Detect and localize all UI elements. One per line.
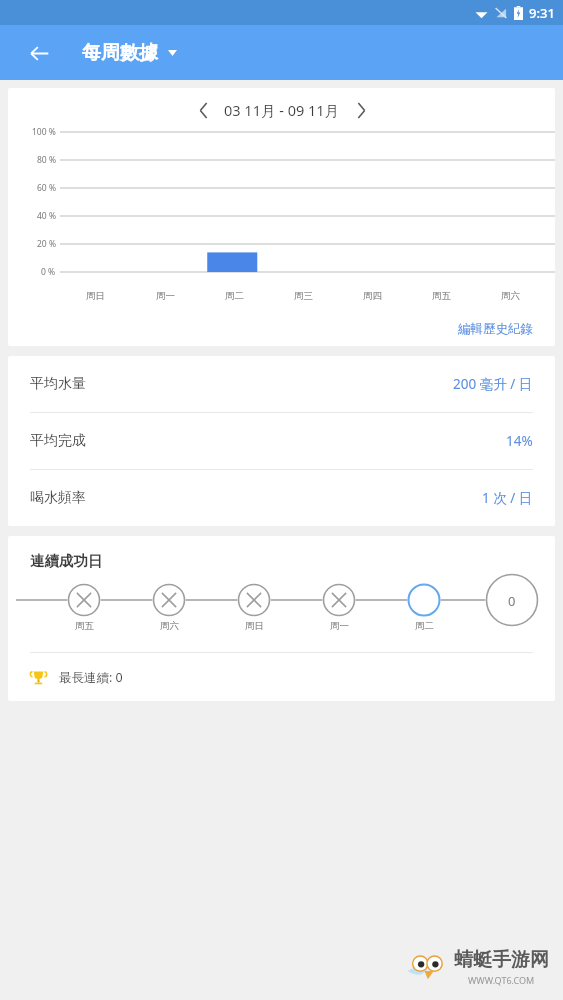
staticText: 周三 [294,290,313,302]
staticText: 周一 [330,620,349,632]
staticText: 每周數據 [82,41,158,65]
button[interactable]: Previous week [186,93,220,127]
staticText: 03 11月 - 09 11月 [224,100,340,120]
staticText: 喝水頻率 [30,489,86,507]
staticText: 周二 [225,290,244,302]
staticText: 連續成功日 [30,552,103,570]
staticText: 周五 [432,290,451,302]
button[interactable]: 每周數據 [82,41,177,65]
staticText: 平均完成 [30,432,86,450]
staticText: 周日 [245,620,264,632]
button[interactable]: 編輯歷史紀錄 [436,315,555,343]
staticText: 最長連續: 0 [59,669,123,686]
staticText: 1 次 / 日 [482,489,533,507]
staticText: 80 % [37,154,56,166]
staticText: 周五 [75,620,94,632]
staticText: WWW.QT6.COM [468,974,535,986]
staticText: 編輯歷史紀錄 [458,321,533,337]
staticText: 周六 [160,620,179,632]
staticText: 周四 [363,290,382,302]
staticText: 平均水量 [30,375,86,393]
staticText: 0 [508,592,516,610]
button[interactable]: Back [20,34,58,72]
staticText: 周二 [415,620,434,632]
staticText: 20 % [37,238,56,250]
staticText: 0 % [41,266,56,278]
staticText: 蜻蜓手游网 [454,948,549,972]
button[interactable]: 平均完成 [8,413,555,469]
staticText: 9:31 [529,4,555,22]
staticText: 100 % [32,126,56,138]
staticText: 周日 [86,290,105,302]
staticText: 14% [506,432,533,450]
button[interactable]: Next week [344,93,378,127]
staticText: 周六 [501,290,520,302]
staticText: 40 % [37,210,56,222]
button[interactable]: 平均水量 [8,356,555,412]
staticText: 200 毫升 / 日 [453,375,533,393]
staticText: 周一 [156,290,175,302]
button[interactable]: 喝水頻率 [8,470,555,526]
staticText: 60 % [37,182,56,194]
